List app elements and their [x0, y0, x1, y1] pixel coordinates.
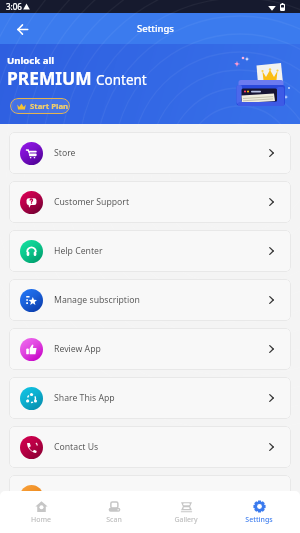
button[interactable] — [9, 475, 291, 517]
staticText: Contact Us — [54, 441, 99, 453]
staticText: Share This App — [54, 392, 115, 404]
staticText: Help Center — [54, 245, 103, 257]
staticText: Store — [54, 147, 76, 159]
button[interactable]: Start Plan — [10, 98, 70, 114]
button[interactable]: Store — [9, 132, 291, 174]
staticText: Manage subscription — [54, 294, 140, 306]
button[interactable]: Gallery — [155, 491, 217, 533]
staticText: Customer Support — [54, 196, 130, 208]
button[interactable]: Manage subscription — [9, 279, 291, 321]
button[interactable]: Customer Support — [9, 181, 291, 223]
staticText: PREMIUM — [7, 66, 92, 90]
staticText: Home — [31, 515, 51, 525]
staticText: Review App — [54, 343, 101, 355]
staticText: 3:06 — [6, 1, 22, 12]
button[interactable]: Share This App — [9, 377, 291, 419]
button[interactable]: Back — [8, 15, 37, 44]
button[interactable]: Settings — [228, 491, 290, 533]
staticText: Scan — [106, 515, 122, 525]
staticText: Settings — [137, 22, 174, 35]
button[interactable]: Home — [10, 491, 72, 533]
button[interactable]: Help Center — [9, 230, 291, 272]
staticText: Unlock all — [7, 54, 55, 67]
button[interactable]: Scan — [83, 491, 145, 533]
staticText: Start Plan — [30, 101, 69, 112]
staticText: Gallery — [174, 515, 198, 525]
button[interactable]: Contact Us — [9, 426, 291, 468]
staticText: Settings — [245, 515, 273, 525]
button[interactable]: Review App — [9, 328, 291, 370]
staticText: Content — [96, 71, 147, 89]
